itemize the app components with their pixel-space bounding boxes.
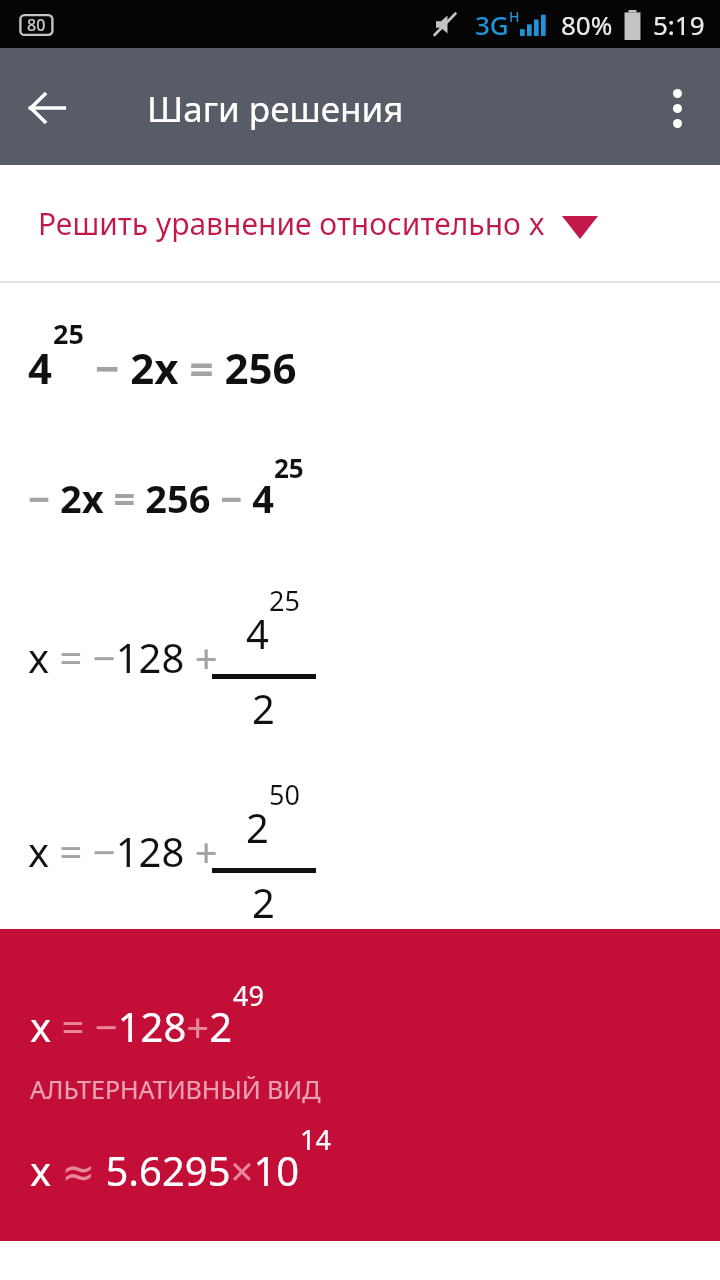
staticText: 80 xyxy=(27,14,46,36)
staticText: 2 xyxy=(252,681,275,735)
staticText: − 2x = 256 − 4 xyxy=(28,472,274,524)
staticText: x = −128 + xyxy=(28,630,229,684)
staticText: АЛЬТЕРНАТИВНЫЙ ВИД xyxy=(30,1072,321,1106)
staticText: 25 xyxy=(269,582,300,619)
staticText: 3G xyxy=(475,7,509,42)
staticText: 4 xyxy=(28,339,53,396)
staticText: 4 xyxy=(246,606,269,660)
staticText: H xyxy=(509,7,520,26)
staticText: 5:19 xyxy=(653,7,705,42)
staticText: 2 xyxy=(246,800,269,854)
staticText: x = −128 + xyxy=(28,824,229,878)
staticText: x ≈ 5.6295×10 xyxy=(30,1143,300,1197)
button[interactable]: x = −128+2 xyxy=(0,929,720,1241)
staticText: 25 xyxy=(274,450,304,485)
staticText: Шаги решения xyxy=(147,85,404,133)
staticText: 49 xyxy=(233,977,264,1014)
staticText: x = −128+2 xyxy=(30,999,233,1053)
staticText: 25 xyxy=(53,315,84,352)
staticText: 80% xyxy=(561,7,613,42)
staticText: 50 xyxy=(269,776,300,813)
button[interactable]: Back xyxy=(20,81,74,135)
staticText: 14 xyxy=(300,1121,331,1158)
button[interactable]: Решить уравнение относительно x xyxy=(0,165,720,281)
staticText: − 2x = 256 xyxy=(84,339,297,396)
staticText: 2 xyxy=(252,875,275,929)
staticText: Решить уравнение относительно x xyxy=(38,203,545,244)
button[interactable]: More options xyxy=(648,79,706,137)
